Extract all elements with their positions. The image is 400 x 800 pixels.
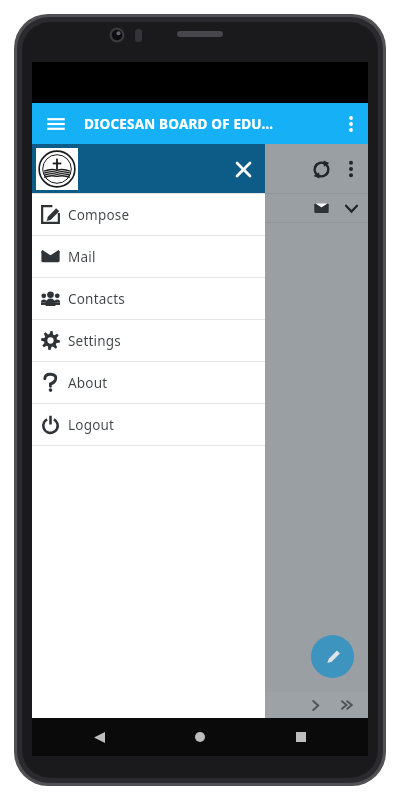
staticText: About <box>68 374 108 392</box>
staticText: Contacts <box>68 290 125 308</box>
button[interactable]: Compose new message <box>311 635 354 678</box>
button[interactable]: Refresh <box>304 152 338 186</box>
button[interactable]: Expand <box>340 197 362 219</box>
button[interactable]: About <box>32 362 265 403</box>
button[interactable]: Settings <box>32 320 265 361</box>
staticText: Compose <box>68 206 130 224</box>
button[interactable]: Compose <box>32 194 265 235</box>
button[interactable]: More options <box>338 156 364 182</box>
staticText: DIOCESAN BOARD OF EDU… <box>84 115 274 133</box>
staticText: Mail <box>68 248 96 266</box>
button[interactable]: Contacts <box>32 278 265 319</box>
button[interactable]: Back <box>84 722 114 752</box>
button[interactable]: Logout <box>32 404 265 445</box>
staticText: Logout <box>68 416 115 434</box>
button[interactable]: Home <box>185 722 215 752</box>
button[interactable]: Last page <box>334 692 360 718</box>
button[interactable]: Next page <box>302 692 328 718</box>
button[interactable]: Mailbox <box>308 195 334 221</box>
button[interactable]: Close drawer <box>227 153 259 185</box>
button[interactable]: More options <box>334 107 368 141</box>
button[interactable]: Mail <box>32 236 265 277</box>
button[interactable]: Recent apps <box>286 722 316 752</box>
staticText: Settings <box>68 332 121 350</box>
button[interactable]: Open navigation drawer <box>38 106 74 142</box>
